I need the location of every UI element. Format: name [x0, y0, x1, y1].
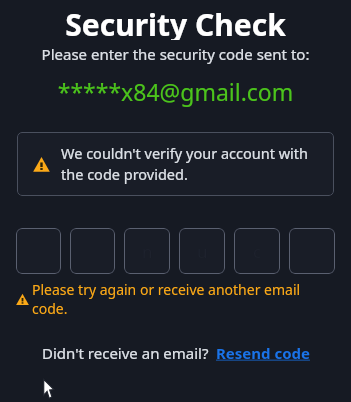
staticText: We couldn't verify your account with the…	[61, 143, 322, 185]
staticText: Security Check	[65, 4, 286, 40]
button[interactable]: n	[124, 228, 170, 274]
staticText: Please enter the security code sent to:	[0, 44, 351, 64]
button[interactable]: c	[234, 228, 280, 274]
button[interactable]	[16, 228, 61, 274]
staticText: Please try again or receive another emai…	[32, 280, 335, 318]
button[interactable]: u	[179, 228, 225, 274]
button[interactable]: Resend code	[216, 343, 310, 363]
staticText: Didn't receive an email?	[42, 343, 209, 363]
button[interactable]	[289, 228, 335, 274]
button[interactable]	[70, 228, 115, 274]
staticText: *****x84@gmail.com	[0, 76, 351, 107]
staticText: Resend code	[216, 343, 310, 363]
